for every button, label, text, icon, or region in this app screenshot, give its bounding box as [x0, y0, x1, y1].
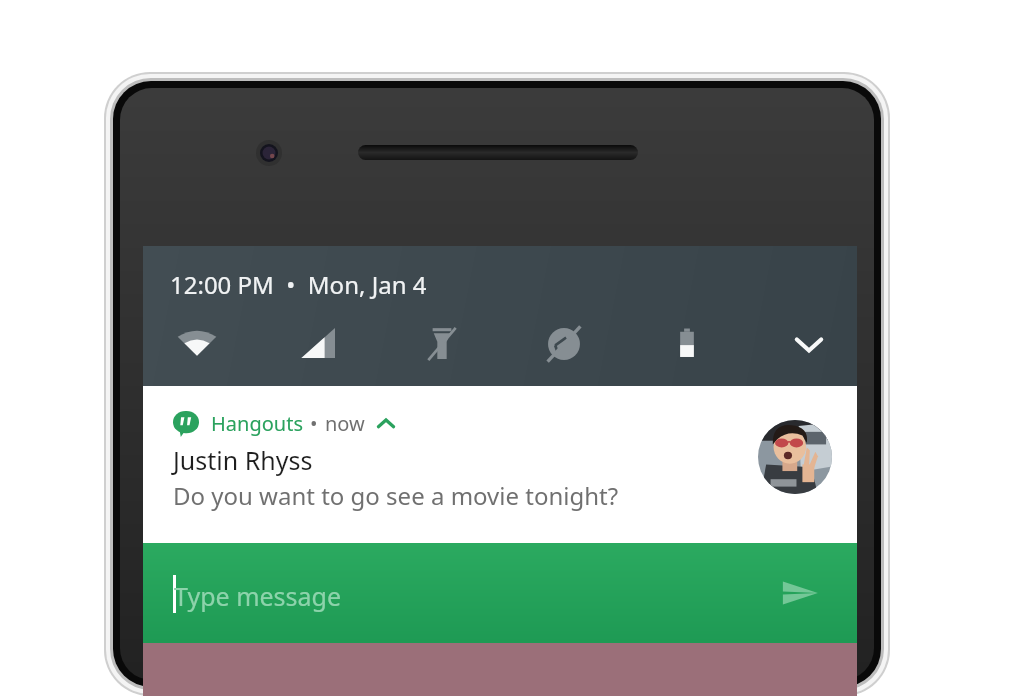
button[interactable]: Auto-rotate off: [536, 316, 592, 372]
staticText: Type message: [174, 579, 342, 613]
staticText: 12:00 PM • Mon, Jan 4: [170, 268, 427, 301]
button[interactable]: Justin Rhyss avatar: [758, 420, 832, 494]
button[interactable]: Collapse notification: [375, 413, 397, 435]
button[interactable]: Flashlight off: [414, 316, 470, 372]
button[interactable]: Battery: [659, 316, 715, 372]
button[interactable]: Send: [773, 566, 827, 620]
button[interactable]: Cellular signal: [291, 316, 347, 372]
staticText: now: [325, 410, 365, 437]
button[interactable]: Wi-Fi: [169, 316, 225, 372]
staticText: Hangouts: [211, 410, 303, 437]
button[interactable]: Hangouts: [143, 386, 857, 543]
button[interactable]: Expand quick settings: [781, 316, 837, 372]
staticText: Justin Rhyss: [173, 443, 313, 477]
staticText: •: [310, 410, 318, 437]
button[interactable]: Type message: [143, 543, 857, 643]
staticText: Do you want to go see a movie tonight?: [173, 479, 619, 512]
